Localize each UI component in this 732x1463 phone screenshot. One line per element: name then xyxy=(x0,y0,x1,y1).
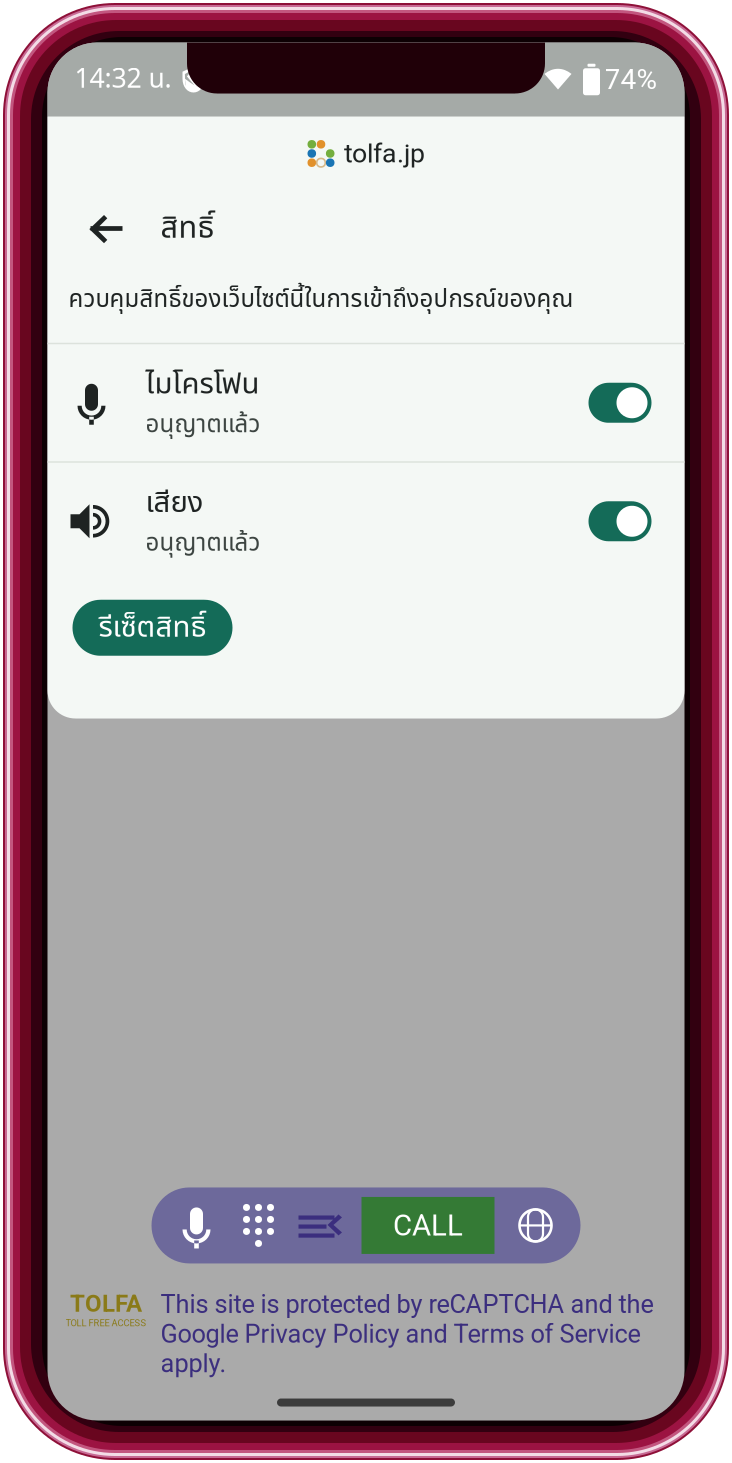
staticText: อนุญาตแล้ว xyxy=(145,525,260,562)
staticText: ไมโครโฟน xyxy=(145,362,259,407)
button[interactable]: Language xyxy=(504,1194,566,1256)
button[interactable]: Menu xyxy=(289,1194,351,1256)
button[interactable]: สิทธิ์ xyxy=(47,190,684,266)
staticText: TOLL FREE ACCESS xyxy=(65,1318,146,1328)
staticText: สิทธิ์ xyxy=(160,205,214,252)
button[interactable]: Microphone xyxy=(165,1194,227,1256)
button[interactable]: Keypad xyxy=(227,1194,289,1256)
staticText: tolfa.jp xyxy=(344,138,425,169)
button[interactable]: CALL xyxy=(361,1197,494,1254)
staticText: อนุญาตแล้ว xyxy=(145,407,260,443)
staticText: เสียง xyxy=(145,481,203,525)
button[interactable]: รีเซ็ตสิทธิ์ xyxy=(72,600,232,656)
staticText: ควบคุมสิทธิ์ของเว็บไซต์นี้ในการเข้าถึงอุ… xyxy=(68,281,573,318)
button[interactable]: เสียง xyxy=(47,463,684,580)
staticText: รีเซ็ตสิทธิ์ xyxy=(98,606,206,650)
staticText: CALL xyxy=(393,1208,463,1243)
button[interactable]: ไมโครโฟน xyxy=(47,344,684,461)
staticText: TOLFA xyxy=(70,1289,142,1317)
staticText: 14:32 น. xyxy=(74,59,171,100)
staticText: 74% xyxy=(604,63,657,96)
staticText: This site is protected by reCAPTCHA and … xyxy=(160,1289,653,1378)
